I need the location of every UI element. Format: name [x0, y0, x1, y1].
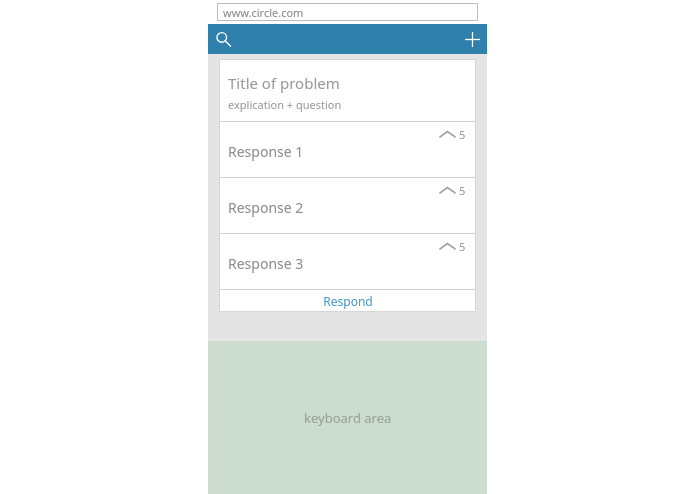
- button[interactable]: Response 3: [219, 234, 476, 289]
- staticText: Response 3: [228, 254, 304, 273]
- button[interactable]: Upvote: [440, 127, 466, 142]
- button[interactable]: Respond: [219, 290, 476, 312]
- button[interactable]: Response 2: [219, 178, 476, 233]
- staticText: 5: [459, 127, 466, 142]
- button[interactable]: Add: [457, 24, 487, 54]
- staticText: explication + question: [228, 97, 342, 112]
- staticText: 5: [459, 183, 466, 198]
- button[interactable]: Title of problem: [219, 59, 476, 121]
- staticText: www.circle.com: [223, 5, 304, 20]
- button[interactable]: Upvote: [440, 183, 466, 198]
- button[interactable]: Search: [208, 24, 238, 54]
- staticText: Response 2: [228, 198, 304, 217]
- button[interactable]: Upvote: [440, 239, 466, 254]
- staticText: Respond: [323, 293, 373, 309]
- staticText: keyboard area: [304, 409, 392, 427]
- staticText: 5: [459, 239, 466, 254]
- button[interactable]: www.circle.com: [217, 3, 478, 21]
- staticText: Title of problem: [228, 73, 340, 93]
- button[interactable]: Response 1: [219, 122, 476, 177]
- staticText: Response 1: [228, 142, 304, 161]
